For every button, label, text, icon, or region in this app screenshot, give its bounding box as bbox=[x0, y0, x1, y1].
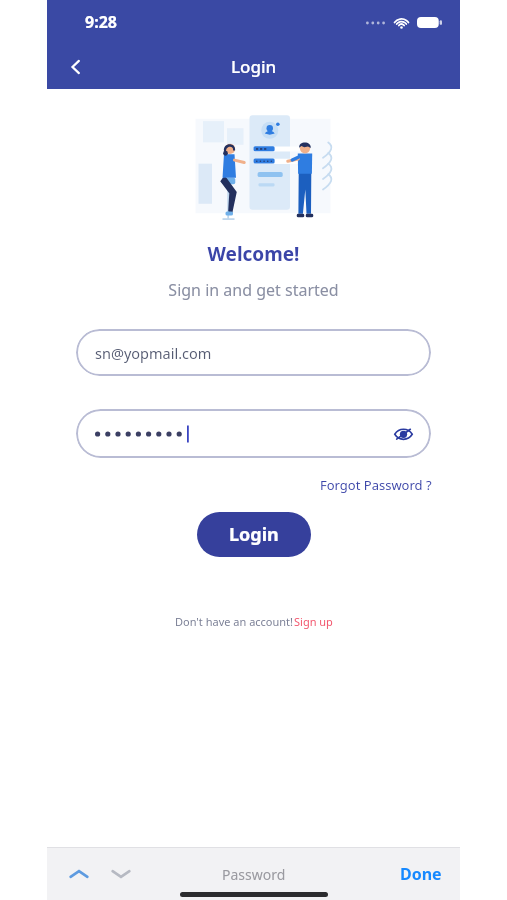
button[interactable]: Forgot Password ? bbox=[318, 474, 434, 496]
staticText: 9:28 bbox=[85, 11, 117, 33]
staticText: Login bbox=[231, 55, 277, 78]
button[interactable]: Sign up bbox=[294, 614, 333, 629]
button[interactable]: Previous field bbox=[61, 856, 97, 892]
staticText: Sign up bbox=[294, 614, 333, 629]
staticText: Forgot Password ? bbox=[320, 476, 432, 494]
button[interactable]: Next field bbox=[103, 856, 139, 892]
staticText: sn@yopmail.com bbox=[95, 343, 212, 363]
button[interactable]: Show password bbox=[76, 409, 431, 458]
button[interactable]: Show password bbox=[386, 417, 420, 451]
staticText: Don't have an account! bbox=[175, 614, 294, 629]
button[interactable]: Done bbox=[396, 859, 446, 889]
staticText: Password bbox=[222, 865, 286, 884]
staticText: Welcome! bbox=[47, 241, 460, 267]
staticText: Login bbox=[229, 522, 279, 547]
staticText: Done bbox=[400, 863, 442, 885]
button[interactable]: Back bbox=[55, 46, 97, 88]
staticText: Sign in and get started bbox=[47, 279, 460, 301]
button[interactable]: Login bbox=[197, 512, 311, 557]
button[interactable]: sn@yopmail.com bbox=[76, 329, 431, 376]
